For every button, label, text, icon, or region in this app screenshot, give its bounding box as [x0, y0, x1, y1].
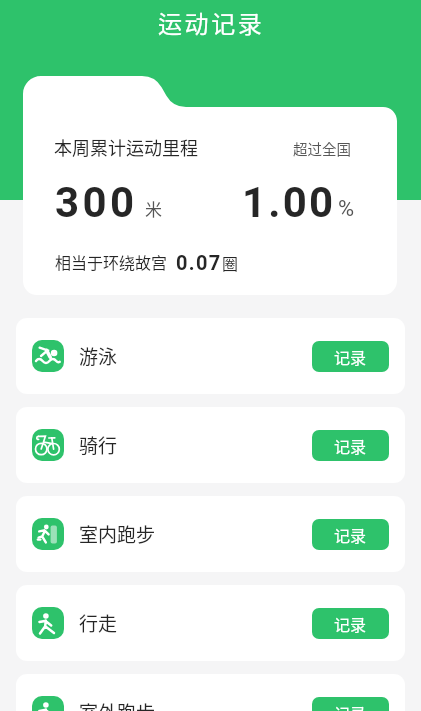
staticText: 超过全国	[293, 138, 351, 159]
staticText: 记录	[334, 345, 367, 368]
button[interactable]: 记录	[312, 341, 389, 372]
button[interactable]: 记录	[312, 608, 389, 639]
staticText: %	[338, 196, 355, 222]
button[interactable]: 室外跑步	[16, 674, 405, 711]
staticText: 骑行	[79, 431, 118, 459]
staticText: 记录	[334, 701, 367, 711]
button[interactable]: 游泳	[16, 318, 405, 394]
staticText: 相当于环绕故宫	[55, 250, 168, 273]
staticText: 圈	[222, 251, 239, 274]
button[interactable]: 记录	[312, 430, 389, 461]
button[interactable]: 记录	[312, 697, 389, 711]
staticText: 游泳	[79, 342, 118, 370]
staticText: 米	[145, 196, 162, 221]
staticText: 0.07	[176, 251, 222, 274]
staticText: 1.00	[242, 178, 336, 227]
staticText: 记录	[334, 612, 367, 635]
staticText: 记录	[334, 523, 367, 546]
staticText: 室内跑步	[79, 520, 156, 548]
button[interactable]: 记录	[312, 519, 389, 550]
button[interactable]: 行走	[16, 585, 405, 661]
staticText: 记录	[334, 434, 367, 457]
staticText: 300	[55, 178, 138, 227]
staticText: 行走	[79, 609, 118, 637]
button[interactable]: 室内跑步	[16, 496, 405, 572]
staticText: 运动记录	[158, 5, 265, 40]
staticText: 室外跑步	[79, 698, 156, 711]
staticText: 本周累计运动里程	[54, 134, 198, 160]
button[interactable]: 骑行	[16, 407, 405, 483]
